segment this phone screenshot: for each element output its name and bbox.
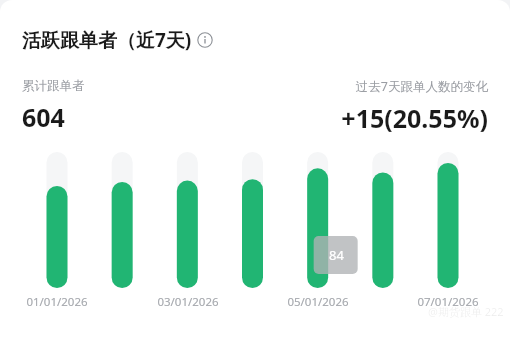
staticText: 活跃跟单者（近7天) [22,27,192,53]
staticText: @期货跟单 222 [428,304,504,319]
staticText: +15(20.55%) [341,101,488,135]
staticText: 累计跟单者 [22,78,85,94]
staticText: 过去7天跟单人数的变化 [355,78,488,95]
staticText: 01/01/2026 [26,294,88,310]
staticText: 03/01/2026 [157,294,219,310]
button[interactable]: 活跃跟单者（近7天) [22,27,510,53]
staticText: 07/01/2026 [417,294,479,310]
staticText: 05/01/2026 [287,294,349,310]
staticText: 84 [329,246,344,264]
staticText: 604 [22,100,65,134]
button[interactable]: 说明 [197,32,213,48]
